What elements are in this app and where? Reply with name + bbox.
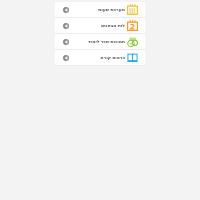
button[interactable]: More info — [55, 34, 145, 49]
other: More info — [55, 39, 76, 45]
button[interactable]: More info — [55, 18, 145, 33]
staticText: מערכת שעות — [76, 6, 125, 12]
staticText: לוח מבחנים — [76, 22, 125, 28]
staticText: תמונות שכר לימוד — [76, 38, 125, 44]
staticText: כרטיס קורא — [76, 54, 125, 60]
other: More info — [55, 7, 76, 13]
button[interactable]: More info — [55, 2, 145, 17]
button[interactable]: More info — [55, 50, 145, 65]
other: More info — [55, 55, 76, 61]
other: More info — [55, 23, 76, 29]
